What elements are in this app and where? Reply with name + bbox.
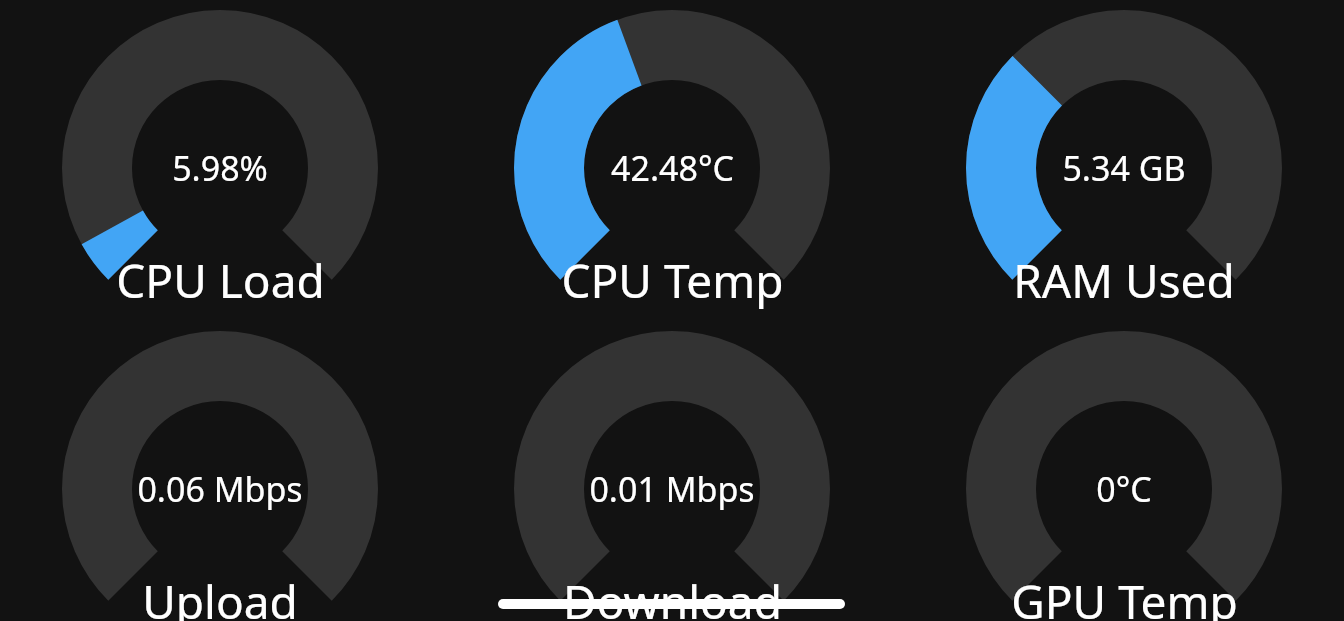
staticText: 0.06 Mbps <box>137 466 303 512</box>
staticText: GPU Temp <box>1011 570 1238 621</box>
staticText: RAM Used <box>1013 249 1235 312</box>
button[interactable]: CPU Temp <box>492 0 852 300</box>
staticText: 42.48°C <box>611 145 734 191</box>
staticText: Upload <box>142 570 298 621</box>
staticText: Download <box>563 570 782 621</box>
staticText: CPU Temp <box>561 249 784 312</box>
button[interactable]: Download <box>492 321 852 621</box>
button[interactable]: CPU Load <box>40 0 400 300</box>
staticText: 5.98% <box>172 145 268 191</box>
button[interactable]: Upload <box>40 321 400 621</box>
staticText: CPU Load <box>116 249 325 312</box>
button[interactable]: GPU Temp <box>944 321 1304 621</box>
staticText: 5.34 GB <box>1062 145 1186 191</box>
staticText: 0°C <box>1096 466 1152 512</box>
button[interactable]: RAM Used <box>944 0 1304 300</box>
staticText: 0.01 Mbps <box>589 466 755 512</box>
